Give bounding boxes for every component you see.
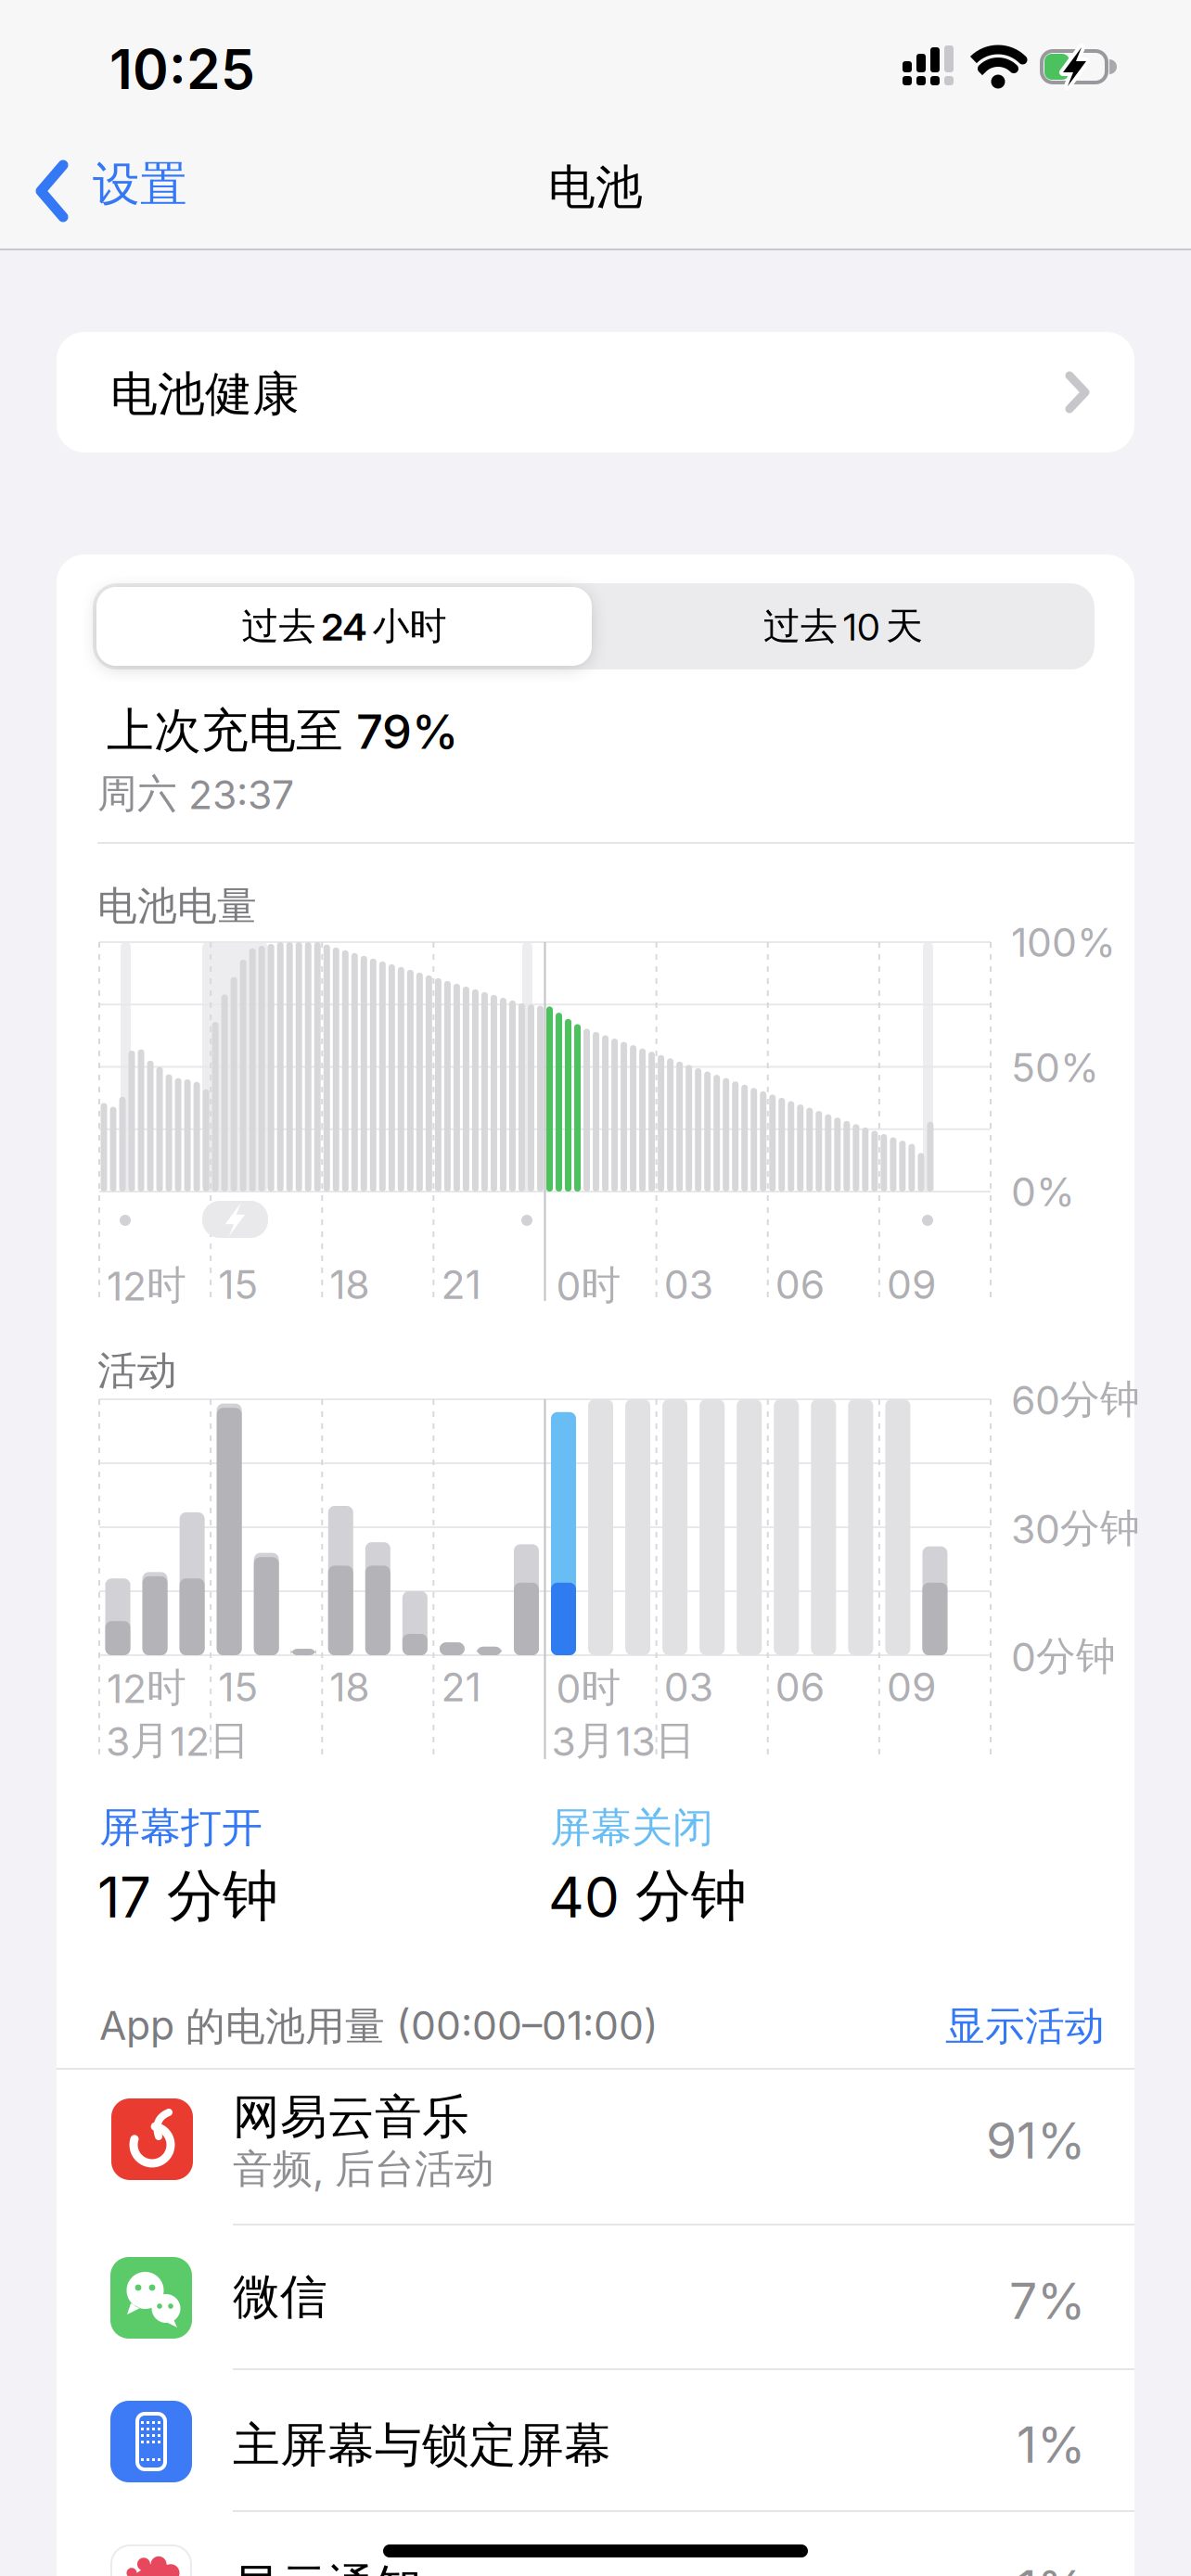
staticText: 电池健康 <box>110 365 300 423</box>
staticText: 0分钟 <box>1011 1632 1116 1681</box>
staticText: 显示通知 <box>233 2558 422 2576</box>
button[interactable]: 显示通知 <box>57 2512 1134 2576</box>
staticText: 3月13日 <box>551 1716 695 1765</box>
button[interactable]: 显示活动 <box>826 2002 1105 2051</box>
button[interactable]: 网易云音乐 <box>57 2069 1134 2223</box>
staticText: 10:25 <box>109 37 255 101</box>
button[interactable]: 微信 <box>57 2225 1134 2368</box>
staticText: 15 <box>218 1261 258 1308</box>
staticText: 过去 24 小时 <box>242 604 447 649</box>
staticText: 12时 <box>107 1664 186 1712</box>
staticText: App 的电池用量 (00:00–01:00) <box>99 2002 659 2051</box>
staticText: 7% <box>1009 2272 1085 2330</box>
staticText: 18 <box>329 1664 369 1710</box>
button[interactable]: 电池健康 <box>57 332 1134 453</box>
button[interactable]: 过去 24 小时 <box>96 587 592 666</box>
staticText: 30分钟 <box>1011 1504 1140 1553</box>
staticText: 主屏幕与锁定屏幕 <box>233 2417 611 2474</box>
staticText: 微信 <box>233 2268 327 2326</box>
staticText: 网易云音乐 <box>233 2088 469 2146</box>
staticText: 音频, 后台活动 <box>233 2145 494 2193</box>
staticText: 过去 10 天 <box>763 604 923 649</box>
staticText: 0% <box>1011 1168 1075 1215</box>
button[interactable]: 过去 10 天 <box>592 587 1095 666</box>
staticText: 上次充电至 79% <box>107 702 458 760</box>
button[interactable]: 设置 <box>35 160 187 222</box>
staticText: 50% <box>1011 1044 1099 1091</box>
staticText: 18 <box>329 1261 369 1308</box>
staticText: 03 <box>664 1664 713 1710</box>
staticText: 40 分钟 <box>548 1862 747 1930</box>
staticText: 03 <box>664 1261 713 1308</box>
staticText: 15 <box>218 1664 258 1710</box>
staticText: 60分钟 <box>1011 1375 1140 1424</box>
staticText: 1% <box>1017 2416 1085 2474</box>
staticText: 屏幕打开 <box>99 1803 263 1853</box>
staticText: 91% <box>986 2111 1085 2170</box>
staticText: 17 分钟 <box>97 1862 278 1930</box>
staticText: 0时 <box>556 1261 621 1310</box>
staticText: 12时 <box>107 1261 186 1310</box>
staticText: 显示活动 <box>945 2002 1105 2051</box>
staticText: 100% <box>1011 919 1116 966</box>
staticText: 0时 <box>556 1664 621 1712</box>
staticText: 21 <box>441 1261 481 1308</box>
staticText: 设置 <box>93 156 187 213</box>
staticText: 活动 <box>97 1346 177 1395</box>
staticText: 电池 <box>548 159 643 216</box>
staticText: 屏幕关闭 <box>550 1803 713 1853</box>
button[interactable]: 主屏幕与锁定屏幕 <box>57 2370 1134 2511</box>
staticText: 周六 23:37 <box>97 770 294 818</box>
staticText: 09 <box>887 1261 936 1308</box>
staticText: 1% <box>1017 2559 1085 2576</box>
staticText: 06 <box>775 1664 824 1710</box>
staticText: 06 <box>775 1261 824 1308</box>
staticText: 3月12日 <box>106 1716 250 1765</box>
staticText: 电池电量 <box>97 882 257 930</box>
staticText: 21 <box>441 1664 481 1710</box>
staticText: 09 <box>887 1664 936 1710</box>
